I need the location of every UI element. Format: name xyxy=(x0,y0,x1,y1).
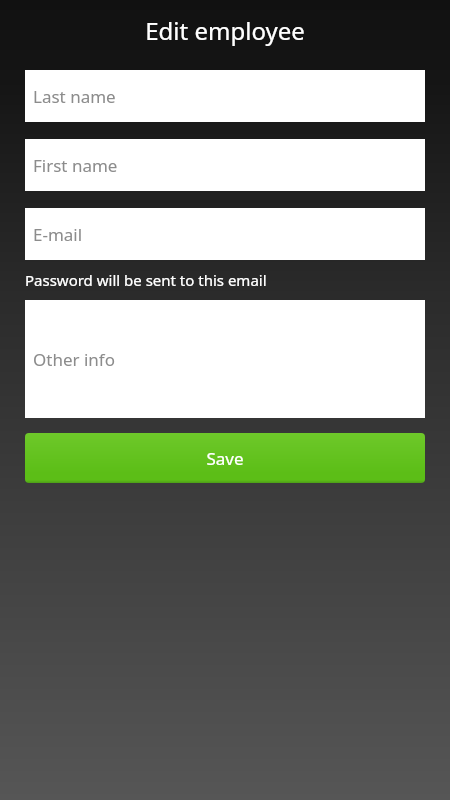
button[interactable]: Save xyxy=(25,433,425,483)
staticText: E-mail xyxy=(33,223,83,246)
staticText: Other info xyxy=(33,348,115,371)
staticText: Password will be sent to this email xyxy=(25,270,267,290)
button[interactable]: Last name xyxy=(25,70,425,122)
staticText: Last name xyxy=(33,85,116,108)
button[interactable]: Other info xyxy=(25,300,425,418)
staticText: Edit employee xyxy=(145,14,305,47)
staticText: Save xyxy=(206,447,244,470)
button[interactable]: First name xyxy=(25,139,425,191)
button[interactable]: E-mail xyxy=(25,208,425,260)
staticText: First name xyxy=(33,154,118,177)
